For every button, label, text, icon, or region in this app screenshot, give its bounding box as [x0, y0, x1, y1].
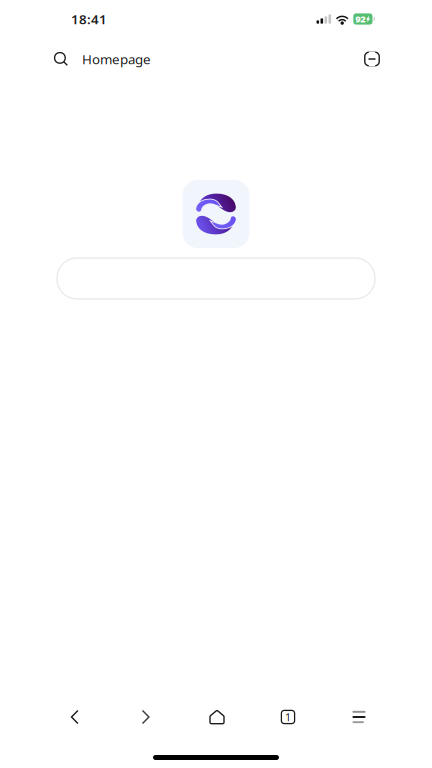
staticText: 92: [355, 13, 365, 25]
button[interactable]: Reader view: [364, 51, 380, 67]
button[interactable]: Back: [52, 695, 98, 739]
button[interactable]: Homepage: [54, 50, 151, 68]
button[interactable]: Forward: [123, 695, 169, 739]
staticText: Homepage: [82, 50, 151, 68]
staticText: 1: [285, 710, 291, 724]
staticText: 18:41: [71, 10, 107, 28]
button[interactable]: Menu: [336, 695, 382, 739]
button[interactable]: Home: [194, 695, 240, 739]
button[interactable]: Tabs: [265, 695, 311, 739]
